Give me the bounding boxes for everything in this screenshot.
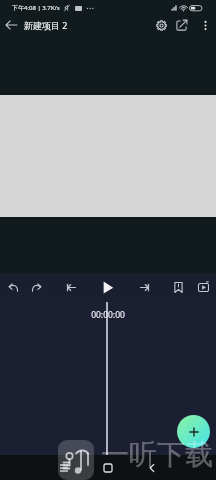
button[interactable]: Home xyxy=(99,459,117,477)
staticText: 00:00:00 xyxy=(87,309,129,321)
staticText: 下午4:08 | 3.7K/s xyxy=(12,4,60,12)
button[interactable]: Add marker xyxy=(170,279,187,296)
button[interactable]: Next frame xyxy=(136,279,153,296)
staticText: 一听下载 xyxy=(101,437,213,472)
staticText: 新建项目 2 xyxy=(24,19,68,31)
button[interactable]: Play xyxy=(99,279,116,296)
button[interactable]: Back xyxy=(2,16,20,34)
button[interactable]: Recent apps xyxy=(55,459,73,477)
button[interactable]: Redo xyxy=(28,279,45,296)
button[interactable]: Export xyxy=(173,17,190,34)
button[interactable]: Back xyxy=(143,459,161,477)
button[interactable]: Settings xyxy=(153,17,170,34)
button[interactable]: Full screen xyxy=(195,279,212,296)
button[interactable]: More options xyxy=(197,17,214,34)
button[interactable]: Undo xyxy=(5,279,22,296)
button[interactable]: Add media xyxy=(177,415,210,448)
button[interactable]: Previous frame xyxy=(63,279,80,296)
